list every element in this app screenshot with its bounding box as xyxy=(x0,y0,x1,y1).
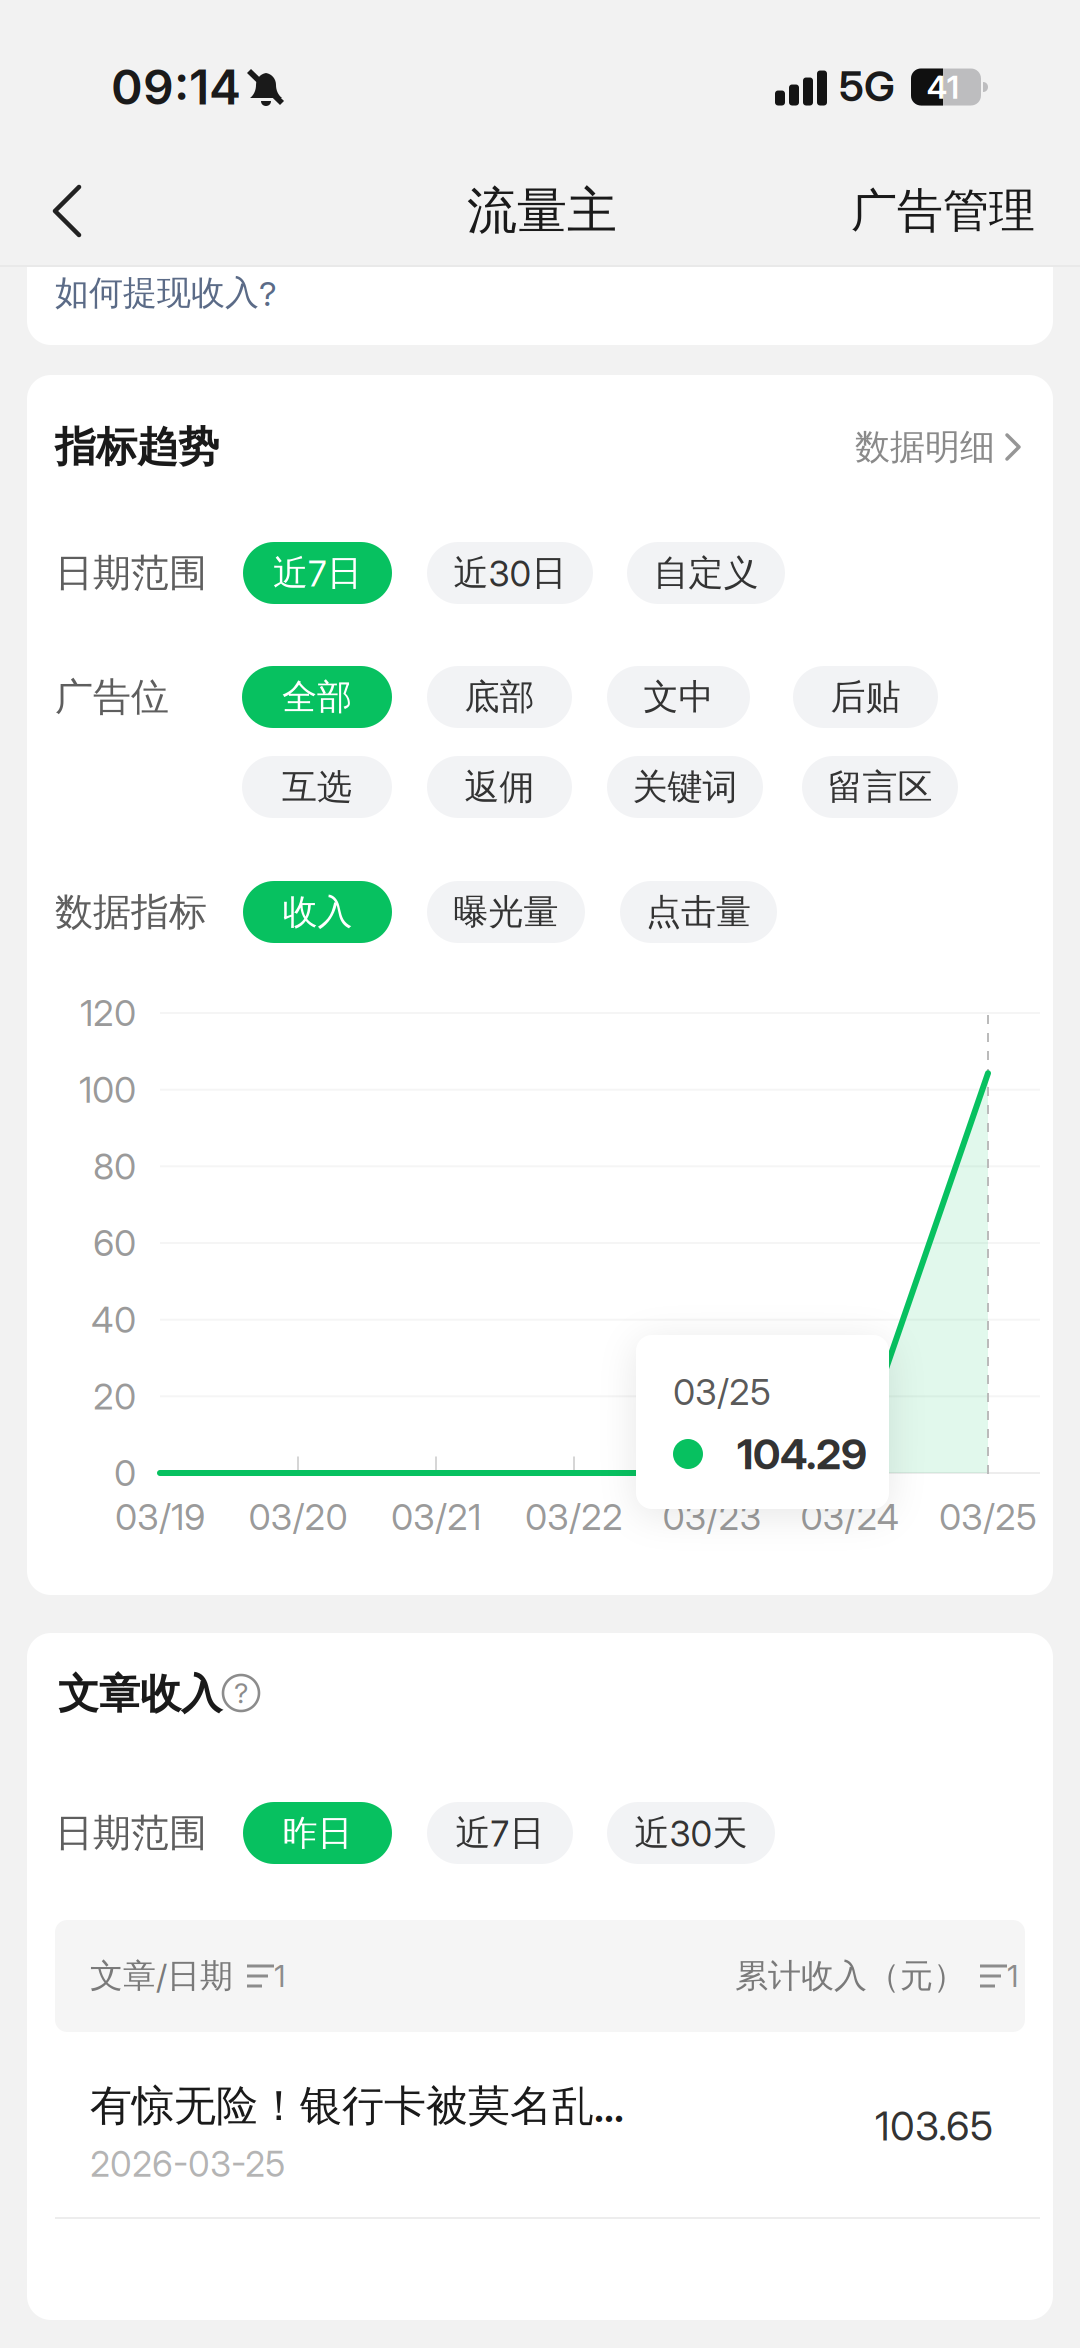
button[interactable]: 底部 xyxy=(427,666,572,728)
staticText: 数据明细 xyxy=(855,425,995,469)
button[interactable]: 后贴 xyxy=(793,666,938,728)
staticText: 03/19 xyxy=(115,1495,205,1539)
staticText: 近30日 xyxy=(453,551,566,595)
staticText: 广告位 xyxy=(55,673,169,721)
staticText: 60 xyxy=(93,1221,136,1265)
staticText: 曝光量 xyxy=(453,890,558,934)
staticText: 80 xyxy=(93,1145,136,1188)
staticText: 09:14 xyxy=(111,58,241,116)
button[interactable]: 广告管理 xyxy=(795,166,1035,256)
staticText: 留言区 xyxy=(827,765,932,809)
button[interactable]: 收入 xyxy=(243,881,392,943)
staticText: 后贴 xyxy=(830,675,900,719)
staticText: 41 xyxy=(926,68,959,106)
button[interactable]: 文中 xyxy=(607,666,750,728)
button[interactable]: 近7日 xyxy=(243,542,392,604)
staticText: 如何提现收入? xyxy=(55,272,277,314)
button[interactable]: 如何提现收入? xyxy=(55,258,475,328)
staticText: 数据指标 xyxy=(55,888,207,936)
staticText: 全部 xyxy=(282,675,352,719)
button[interactable]: 曝光量 xyxy=(427,881,585,943)
staticText: ? xyxy=(234,1676,248,1710)
staticText: 03/23 xyxy=(662,1495,761,1539)
staticText: 120 xyxy=(80,991,136,1035)
staticText: 指标趋势 xyxy=(55,421,219,473)
button[interactable]: 近7日 xyxy=(427,1802,573,1864)
staticText: 累计收入（元） xyxy=(735,1955,966,1997)
staticText: 5G xyxy=(839,61,895,111)
staticText: 03/22 xyxy=(525,1495,623,1539)
staticText: 近30天 xyxy=(634,1811,747,1855)
button[interactable]: 累计收入（元） xyxy=(580,1920,1020,2032)
staticText: 近7日 xyxy=(273,551,362,595)
staticText: 03/24 xyxy=(800,1495,899,1539)
staticText: 流量主 xyxy=(467,179,617,242)
staticText: 返佣 xyxy=(464,765,534,809)
staticText: 2026-03-25 xyxy=(90,2143,285,2185)
staticText: 广告管理 xyxy=(851,182,1035,240)
button[interactable]: 全部 xyxy=(242,666,392,728)
staticText: 有惊无险！银行卡被莫名乱... xyxy=(90,2079,624,2132)
button[interactable]: 点击量 xyxy=(620,881,777,943)
staticText: 日期范围 xyxy=(55,1809,207,1857)
staticText: 20 xyxy=(93,1375,136,1418)
button[interactable]: 互选 xyxy=(242,756,392,818)
button[interactable]: 有惊无险！银行卡被莫名乱... xyxy=(55,2050,1025,2210)
button[interactable]: 昨日 xyxy=(243,1802,392,1864)
button[interactable]: 留言区 xyxy=(802,756,958,818)
staticText: 昨日 xyxy=(282,1811,352,1855)
button[interactable]: 近30日 xyxy=(427,542,593,604)
staticText: 日期范围 xyxy=(55,549,207,597)
staticText: 文章/日期 xyxy=(90,1955,233,1997)
staticText: 1 xyxy=(1007,1958,1019,1994)
staticText: 03/20 xyxy=(248,1495,347,1539)
button[interactable]: 关键词 xyxy=(607,756,763,818)
staticText: 104.29 xyxy=(737,1429,867,1479)
staticText: 文章收入 xyxy=(58,1668,222,1720)
staticText: 收入 xyxy=(282,890,352,934)
button[interactable]: 帮助 xyxy=(219,1671,263,1715)
staticText: 0 xyxy=(114,1451,136,1495)
staticText: 100 xyxy=(79,1068,136,1111)
staticText: 近7日 xyxy=(455,1811,544,1855)
staticText: 底部 xyxy=(464,675,534,719)
button[interactable]: 文章/日期 xyxy=(90,1920,430,2032)
staticText: 103.65 xyxy=(875,2102,993,2150)
staticText: 40 xyxy=(91,1298,136,1341)
staticText: 03/25 xyxy=(939,1495,1037,1539)
staticText: 1 xyxy=(274,1958,286,1994)
button[interactable]: 近30天 xyxy=(607,1802,775,1864)
staticText: 点击量 xyxy=(646,890,751,934)
staticText: 03/25 xyxy=(673,1370,771,1414)
button[interactable]: 数据明细 xyxy=(742,412,1022,482)
staticText: 关键词 xyxy=(632,765,737,809)
button[interactable]: 返佣 xyxy=(427,756,572,818)
button[interactable]: Back xyxy=(7,165,113,257)
staticText: 文中 xyxy=(643,675,713,719)
staticText: 自定义 xyxy=(653,551,758,595)
staticText: 03/21 xyxy=(391,1495,481,1539)
button[interactable]: 自定义 xyxy=(627,542,785,604)
staticText: 互选 xyxy=(282,765,352,809)
